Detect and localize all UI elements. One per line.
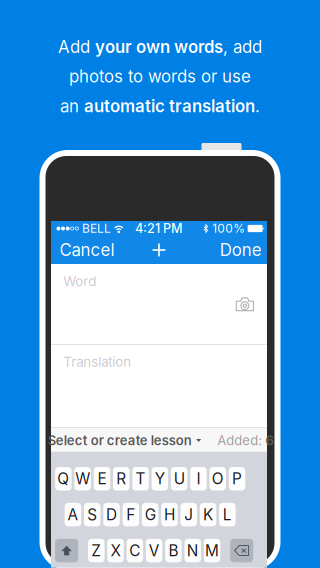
button[interactable]: Add word <box>145 236 173 264</box>
button[interactable]: I <box>190 467 207 490</box>
button[interactable]: V <box>146 539 162 562</box>
staticText: H <box>164 505 175 524</box>
staticText: Added: <box>217 433 262 448</box>
button[interactable]: C <box>127 539 143 562</box>
button[interactable]: U <box>171 467 187 490</box>
staticText: G <box>145 505 156 524</box>
button[interactable]: Z <box>88 539 104 562</box>
staticText: Word <box>63 273 96 289</box>
staticText: Cancel <box>60 240 115 260</box>
button[interactable]: T <box>132 467 149 490</box>
staticText: V <box>149 541 160 560</box>
button[interactable]: Done <box>212 236 267 264</box>
button[interactable]: Cancel <box>51 236 123 264</box>
staticText: S <box>87 505 97 524</box>
staticText: X <box>111 541 121 560</box>
staticText: N <box>187 541 199 560</box>
button[interactable]: X <box>107 539 124 562</box>
staticText: R <box>116 469 126 488</box>
staticText: L <box>223 505 232 524</box>
staticText: P <box>232 469 242 488</box>
staticText: I <box>196 469 200 488</box>
staticText: Done <box>220 240 262 260</box>
staticText: O <box>212 469 224 488</box>
staticText: Y <box>155 469 165 488</box>
button[interactable]: O <box>209 467 226 490</box>
staticText: U <box>174 469 185 488</box>
button[interactable]: Delete <box>230 539 253 562</box>
staticText: J <box>184 505 193 524</box>
button[interactable]: Y <box>152 467 168 490</box>
button[interactable]: Add photo <box>231 292 259 316</box>
staticText: Z <box>91 541 101 560</box>
staticText: A <box>67 505 78 524</box>
staticText: Q <box>57 469 69 488</box>
button[interactable]: N <box>184 539 201 562</box>
button[interactable]: R <box>113 467 129 490</box>
button[interactable]: K <box>200 503 216 526</box>
button[interactable]: W <box>74 467 91 490</box>
staticText: E <box>97 469 106 488</box>
button[interactable]: M <box>204 539 220 562</box>
button[interactable]: Select or create lesson <box>35 428 209 452</box>
button[interactable]: A <box>65 503 81 526</box>
staticText: F <box>126 505 135 524</box>
staticText: Translation <box>63 354 131 370</box>
staticText: D <box>106 505 117 524</box>
button[interactable]: G <box>142 503 158 526</box>
button[interactable]: P <box>229 467 245 490</box>
button[interactable]: L <box>219 503 236 526</box>
staticText: photos to words or use <box>69 66 251 87</box>
button[interactable]: J <box>180 503 197 526</box>
staticText: W <box>75 469 90 488</box>
button[interactable]: F <box>123 503 139 526</box>
button[interactable]: S <box>84 503 100 526</box>
button[interactable]: Q <box>55 467 72 490</box>
staticText: T <box>136 469 146 488</box>
staticText: Add your own words, add <box>58 37 262 57</box>
button[interactable]: Shift <box>55 539 78 562</box>
staticText: B <box>168 541 178 560</box>
button[interactable]: B <box>165 539 182 562</box>
staticText: 6 <box>266 433 274 448</box>
button[interactable]: E <box>94 467 110 490</box>
button[interactable]: H <box>161 503 178 526</box>
staticText: C <box>129 541 140 560</box>
button[interactable]: D <box>103 503 120 526</box>
staticText: 100% <box>212 221 245 236</box>
staticText: Select or create lesson <box>48 433 192 448</box>
staticText: 4:21 PM <box>135 221 183 236</box>
staticText: BELL <box>82 221 111 236</box>
staticText: M <box>205 541 219 560</box>
staticText: K <box>203 505 213 524</box>
staticText: an automatic translation. <box>60 96 260 116</box>
